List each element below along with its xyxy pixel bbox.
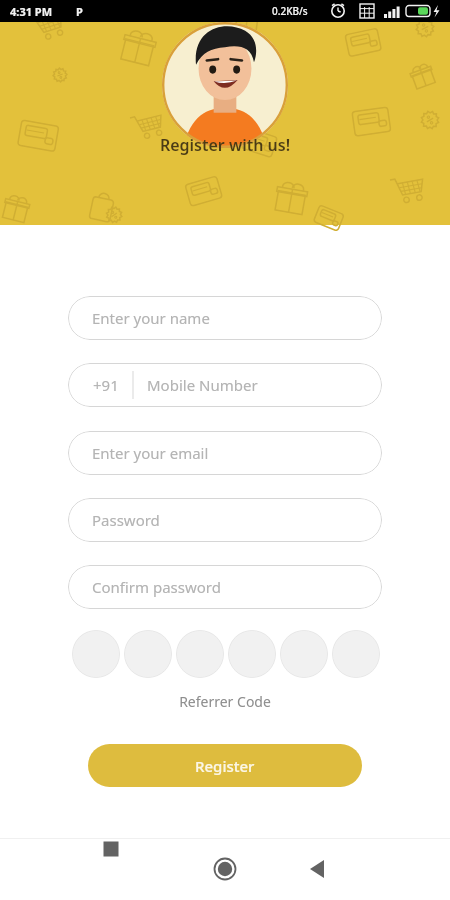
staticText: 0.2KB/s — [272, 4, 308, 18]
staticText: Confirm password — [92, 577, 221, 597]
staticText: Enter your name — [92, 308, 210, 328]
staticText: P — [76, 4, 83, 19]
staticText: Enter your email — [92, 443, 209, 463]
button[interactable]: +91 — [68, 363, 382, 407]
button[interactable]: Confirm password — [68, 565, 382, 609]
staticText: 4:31 PM — [10, 4, 53, 19]
button[interactable]: Enter your name — [68, 296, 382, 340]
button[interactable]: Home — [205, 849, 245, 889]
button[interactable] — [124, 630, 172, 678]
staticText: Password — [92, 510, 160, 530]
button[interactable] — [280, 630, 328, 678]
button[interactable] — [176, 630, 224, 678]
button[interactable] — [72, 630, 120, 678]
button[interactable]: Register — [88, 744, 362, 787]
button[interactable]: Back — [298, 849, 338, 889]
button[interactable] — [332, 630, 380, 678]
staticText: +91 — [93, 375, 119, 395]
staticText: Referrer Code — [0, 692, 450, 711]
button[interactable]: Enter your email — [68, 431, 382, 475]
staticText: Mobile Number — [147, 375, 258, 395]
staticText: Register with us! — [0, 134, 450, 156]
staticText: Register — [195, 756, 255, 776]
button[interactable]: Password — [68, 498, 382, 542]
button[interactable] — [228, 630, 276, 678]
